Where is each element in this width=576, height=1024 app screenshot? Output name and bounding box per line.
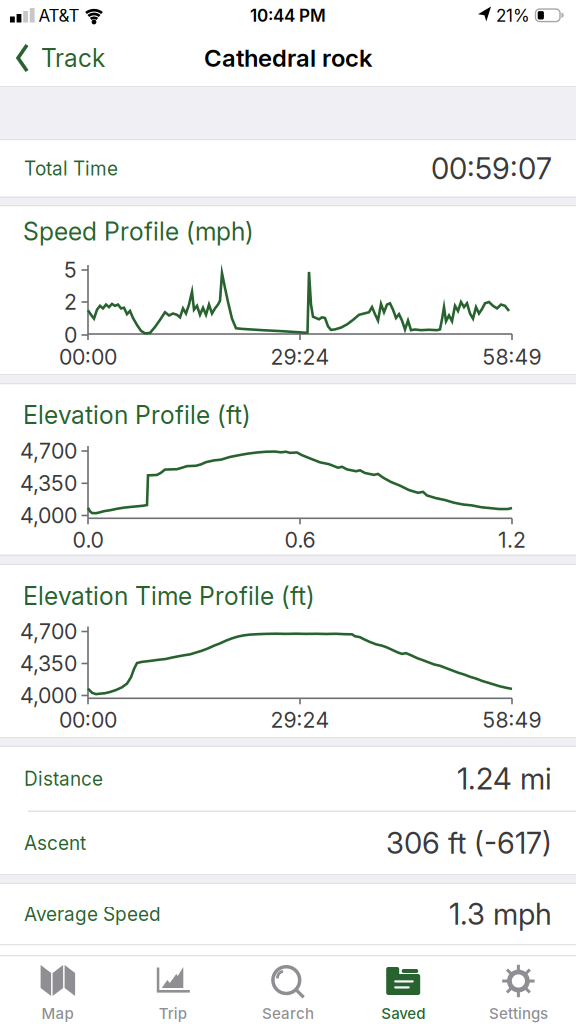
staticText: 21% [496, 5, 530, 26]
staticText: Distance [24, 767, 103, 790]
button[interactable]: Saved [346, 956, 461, 1024]
staticText: 0.0 [72, 527, 103, 553]
staticText: 5 [64, 257, 77, 283]
staticText: Speed Profile (mph) [23, 216, 254, 246]
staticText: 1.24 mi [457, 761, 552, 796]
staticText: 00:00 [59, 344, 117, 370]
staticText: Track [41, 43, 105, 73]
button[interactable]: Back to Track [0, 30, 105, 86]
staticText: 4,350 [20, 470, 77, 496]
button[interactable]: Map [0, 956, 115, 1024]
staticText: 4,700 [20, 438, 77, 464]
staticText: Map [42, 1004, 74, 1023]
staticText: Saved [381, 1004, 425, 1023]
staticText: 4,350 [20, 651, 77, 676]
staticText: Ascent [24, 831, 86, 854]
staticText: Cathedral rock [204, 43, 372, 72]
staticText: Elevation Time Profile (ft) [23, 581, 315, 611]
staticText: 4,700 [20, 619, 77, 644]
staticText: 00:00 [59, 707, 117, 733]
staticText: Settings [489, 1004, 548, 1023]
staticText: AT&T [38, 5, 79, 26]
staticText: 0.6 [284, 527, 315, 553]
staticText: 29:24 [270, 707, 329, 733]
staticText: 4,000 [20, 503, 77, 528]
staticText: 29:24 [270, 344, 329, 370]
staticText: Search [262, 1004, 314, 1023]
staticText: 306 ft (-617) [386, 825, 552, 861]
staticText: 4,000 [20, 683, 77, 708]
staticText: 00:59:07 [431, 151, 552, 186]
staticText: 1.2 [498, 527, 526, 553]
staticText: Total Time [24, 157, 118, 180]
staticText: 0 [64, 322, 77, 348]
staticText: 58:49 [482, 344, 541, 370]
button[interactable]: Search [230, 956, 346, 1024]
staticText: Elevation Profile (ft) [23, 400, 251, 430]
button[interactable]: Trip [115, 956, 230, 1024]
staticText: Trip [159, 1004, 187, 1023]
staticText: 58:49 [482, 707, 541, 733]
button[interactable]: Settings [461, 956, 576, 1024]
staticText: 10:44 PM [250, 5, 326, 26]
staticText: 2 [64, 289, 77, 315]
staticText: 1.3 mph [449, 896, 552, 932]
staticText: Average Speed [24, 902, 161, 925]
